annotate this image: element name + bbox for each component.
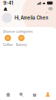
button[interactable]: Messages bbox=[48, 6, 53, 11]
button[interactable]: Account bbox=[42, 90, 54, 99]
staticText: Coffee bbox=[3, 43, 13, 47]
button[interactable]: Explore bbox=[15, 90, 27, 99]
button[interactable]: Profile bbox=[3, 6, 8, 11]
button[interactable]: Coffee bbox=[2, 35, 14, 47]
staticText: Browse categories bbox=[3, 29, 33, 34]
staticText: 9:41 bbox=[3, 0, 13, 6]
button[interactable]: Orders bbox=[29, 90, 41, 99]
staticText: Bakery bbox=[16, 43, 27, 47]
button[interactable]: Home bbox=[2, 90, 14, 99]
button[interactable]: Bakery bbox=[15, 35, 28, 47]
staticText: Hi, Amelia Chen bbox=[14, 15, 48, 21]
